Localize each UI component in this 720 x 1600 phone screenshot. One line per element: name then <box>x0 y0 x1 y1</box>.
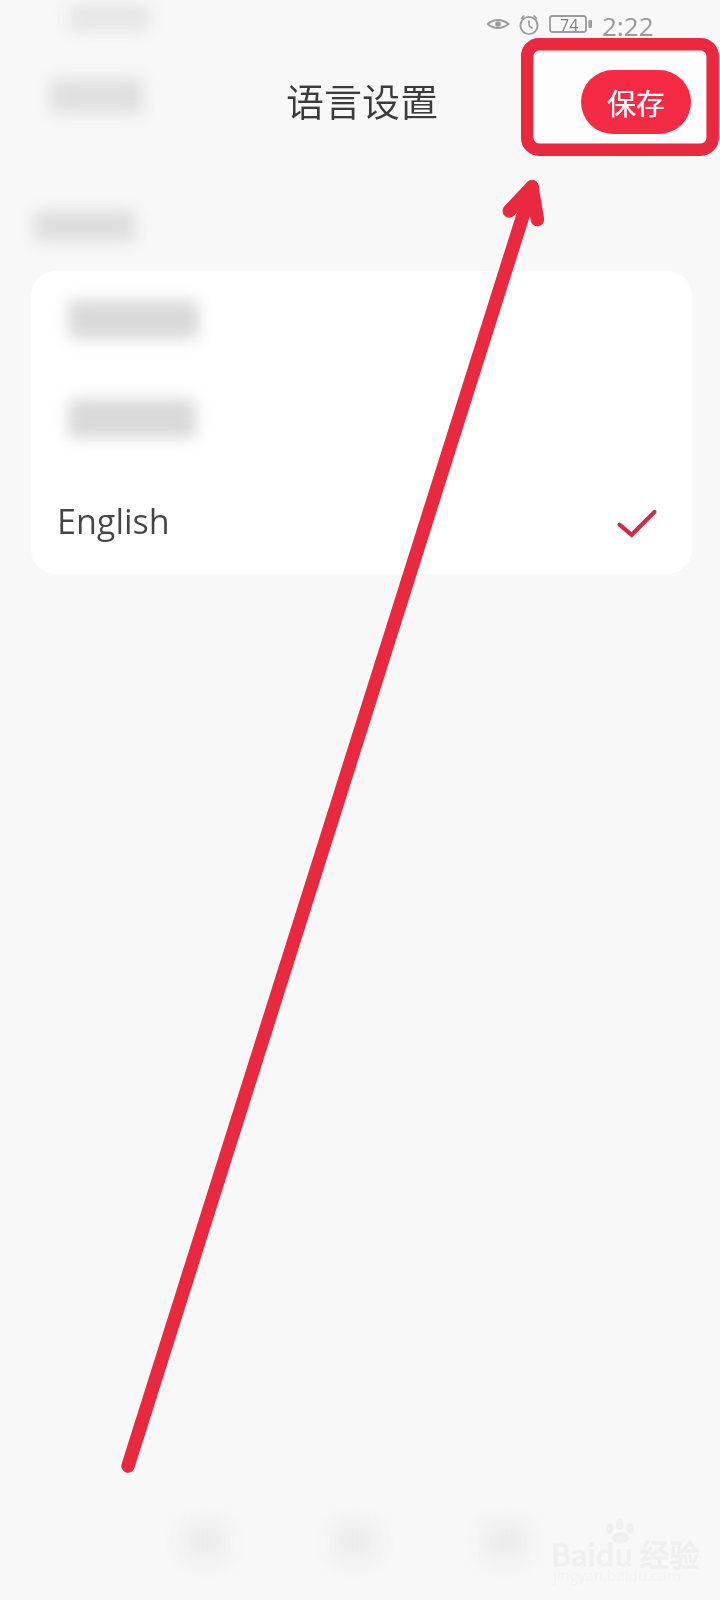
staticText: 保存 <box>607 81 666 123</box>
other: Alarm <box>518 13 540 35</box>
staticText: 74 <box>560 14 579 34</box>
button[interactable] <box>31 271 692 372</box>
button[interactable] <box>31 372 692 473</box>
button[interactable]: English <box>31 473 692 574</box>
other: Selected <box>618 509 656 539</box>
other: Battery 74 percent <box>550 14 594 34</box>
button[interactable]: 保存 <box>581 70 691 134</box>
staticText: English <box>57 498 170 544</box>
other: Eye protection <box>487 15 509 33</box>
staticText: 2:22 <box>602 8 654 40</box>
staticText: 语言设置 <box>286 72 439 127</box>
staticText: Baidu 经验 <box>551 1531 700 1574</box>
